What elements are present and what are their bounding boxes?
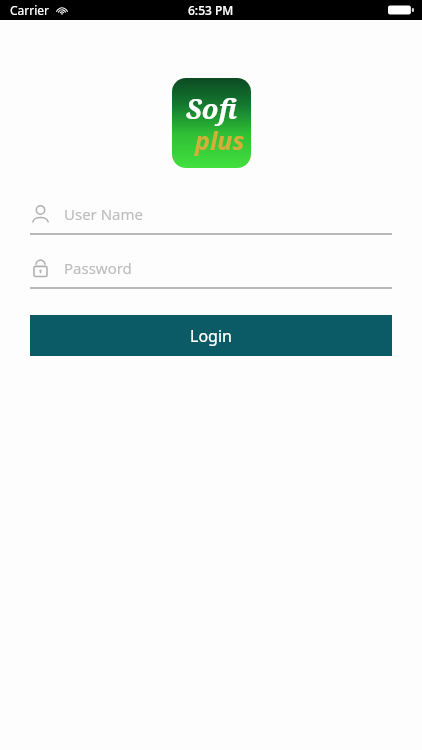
staticText: User Name (64, 204, 144, 224)
staticText: Password (64, 258, 132, 278)
staticText: plus (195, 123, 245, 157)
staticText: Sofi (186, 90, 238, 127)
staticText: Login (190, 325, 232, 347)
button[interactable]: User Name (30, 198, 392, 235)
staticText: 6:53 PM (188, 2, 234, 18)
button[interactable]: Login (30, 315, 392, 356)
button[interactable]: Password (30, 252, 392, 289)
staticText: Carrier (10, 2, 50, 18)
